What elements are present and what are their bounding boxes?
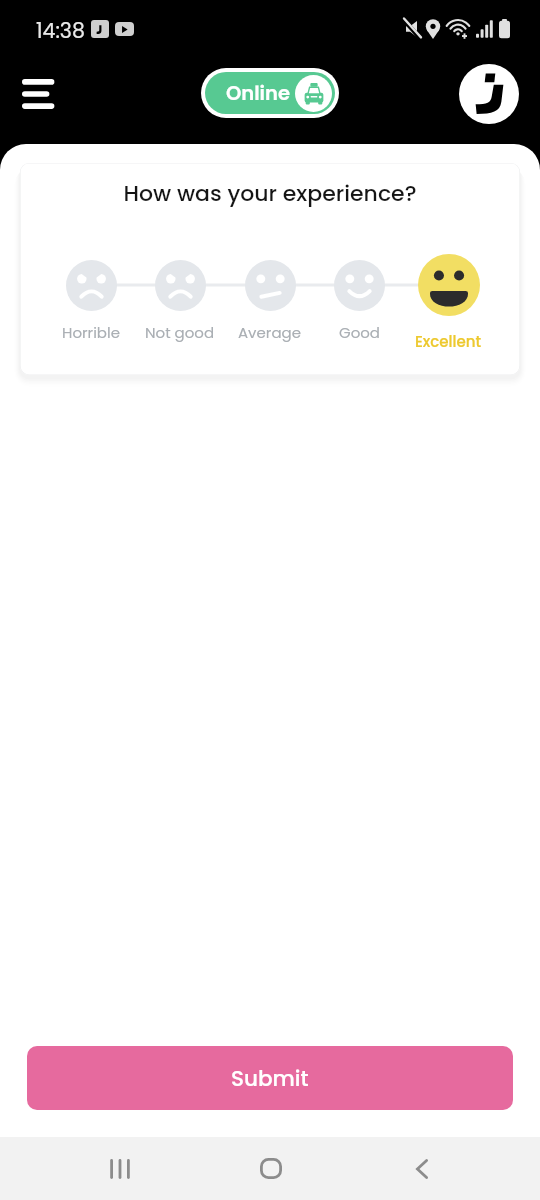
- button[interactable]: Not good: [134, 260, 226, 350]
- button[interactable]: Menu: [12, 70, 64, 118]
- staticText: Average: [238, 322, 302, 343]
- staticText: Horrible: [62, 322, 120, 343]
- button[interactable]: Average: [224, 260, 316, 350]
- button[interactable]: Horrible: [45, 260, 137, 350]
- staticText: How was your experience?: [20, 178, 520, 209]
- button[interactable]: Excellent: [402, 254, 494, 349]
- staticText: Submit: [231, 1063, 309, 1093]
- button[interactable]: Good: [313, 260, 405, 350]
- button[interactable]: Back: [392, 1137, 452, 1200]
- staticText: Online: [226, 80, 290, 107]
- staticText: 14:38: [36, 16, 85, 45]
- button[interactable]: Profile: [459, 64, 519, 124]
- staticText: Not good: [145, 322, 215, 343]
- staticText: Excellent: [415, 331, 482, 349]
- button[interactable]: Submit: [27, 1046, 513, 1110]
- button[interactable]: Recents: [90, 1137, 150, 1200]
- button[interactable]: Online: [205, 72, 335, 114]
- button[interactable]: Home: [241, 1137, 301, 1200]
- staticText: Good: [339, 322, 381, 343]
